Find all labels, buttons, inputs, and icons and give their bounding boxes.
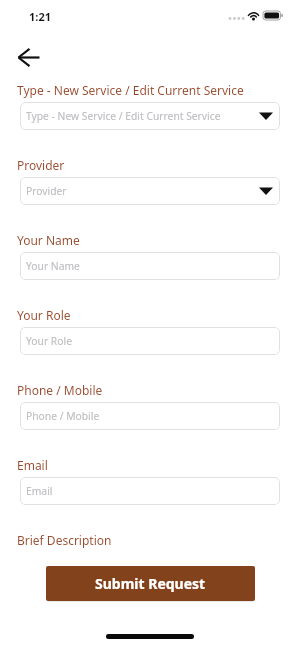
staticText: Brief Description — [17, 532, 112, 548]
button[interactable]: Your Role — [20, 327, 280, 355]
staticText: Your Role — [26, 334, 72, 348]
staticText: Provider — [26, 184, 67, 198]
button[interactable] — [10, 42, 48, 72]
staticText: Phone / Mobile — [26, 409, 100, 423]
staticText: Your Name — [26, 259, 80, 273]
button[interactable]: Submit Request — [46, 566, 255, 601]
staticText: Type - New Service / Edit Current Servic… — [17, 82, 244, 98]
button[interactable]: Email — [20, 477, 280, 505]
staticText: Email — [26, 484, 53, 498]
staticText: Type - New Service / Edit Current Servic… — [26, 109, 221, 123]
button[interactable]: Type - New Service / Edit Current Servic… — [20, 102, 280, 130]
button[interactable]: Phone / Mobile — [20, 402, 280, 430]
staticText: Phone / Mobile — [17, 382, 103, 398]
staticText: Provider — [17, 157, 65, 173]
staticText: Submit Request — [95, 574, 206, 593]
button[interactable]: Provider — [20, 177, 280, 205]
staticText: Email — [17, 457, 48, 473]
staticText: Your Role — [17, 307, 71, 323]
staticText: 1:21 — [29, 9, 51, 24]
button[interactable]: Your Name — [20, 252, 280, 280]
staticText: Your Name — [17, 232, 80, 248]
